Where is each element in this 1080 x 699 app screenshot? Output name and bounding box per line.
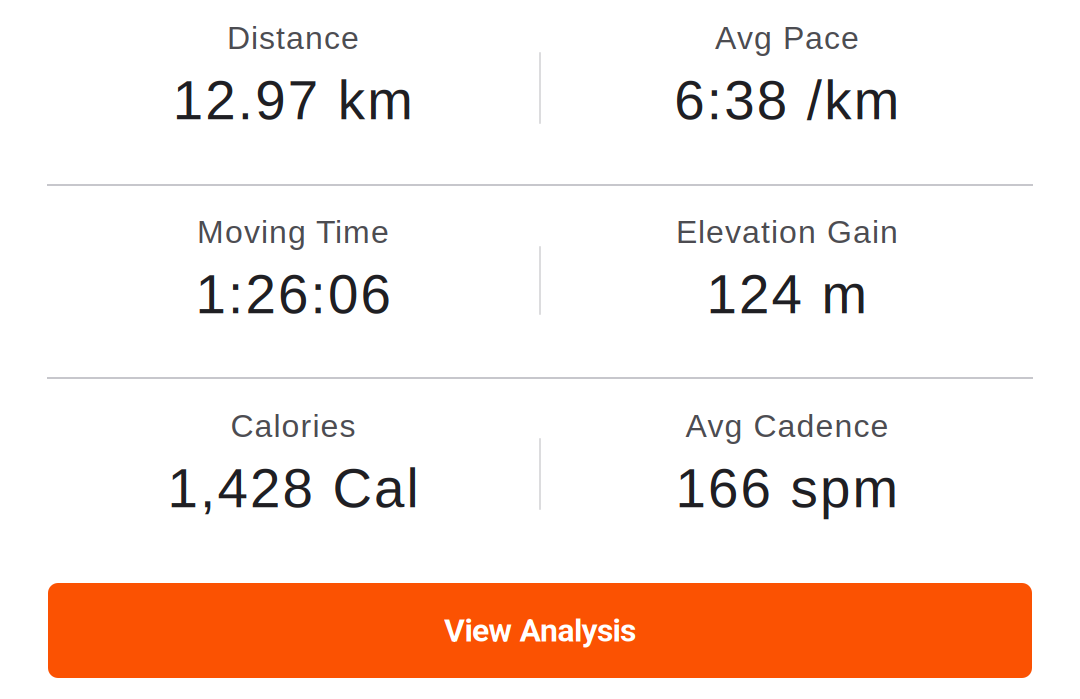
staticText: 1,428 Cal bbox=[167, 458, 418, 519]
staticText: Moving Time bbox=[197, 214, 389, 250]
staticText: View Analysis bbox=[444, 612, 636, 649]
staticText: Elevation Gain bbox=[676, 214, 898, 250]
staticText: 12.97 km bbox=[173, 70, 413, 131]
staticText: Calories bbox=[230, 408, 355, 444]
button[interactable]: View Analysis bbox=[48, 583, 1032, 678]
staticText: 166 spm bbox=[675, 458, 898, 519]
staticText: 124 m bbox=[706, 264, 867, 325]
staticText: 1:26:06 bbox=[195, 264, 390, 325]
staticText: Avg Cadence bbox=[685, 408, 888, 444]
staticText: Avg Pace bbox=[715, 20, 859, 56]
staticText: 6:38 /km bbox=[674, 70, 900, 131]
staticText: Distance bbox=[227, 20, 359, 56]
